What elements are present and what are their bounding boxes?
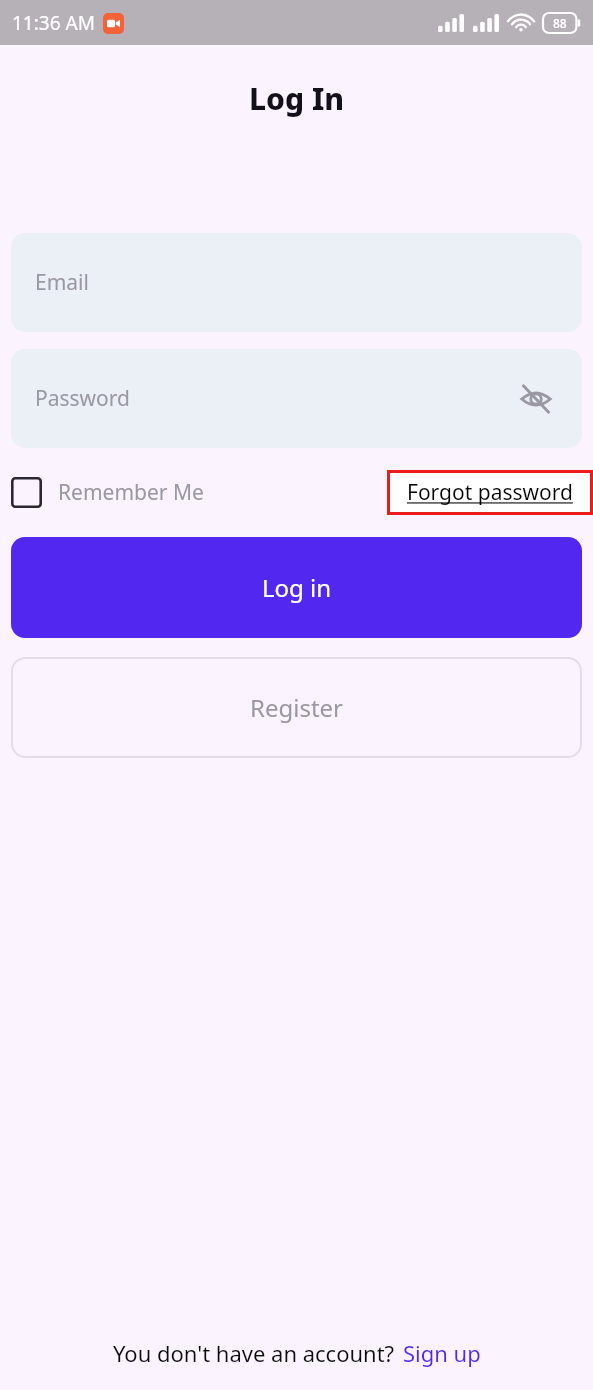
staticText: Log in (262, 571, 332, 604)
button[interactable]: Email (11, 233, 582, 332)
staticText: 88 (553, 15, 567, 31)
staticText: Forgot password (407, 478, 573, 507)
staticText: Remember Me (58, 478, 204, 507)
button[interactable]: Log in (11, 537, 582, 638)
staticText: You don't have an account? (113, 1338, 395, 1368)
button[interactable]: Show password (514, 377, 558, 421)
staticText: 11:36 AM (12, 10, 95, 36)
staticText: Log In (249, 78, 345, 119)
staticText: Email (35, 268, 89, 297)
button[interactable]: Remember Me (11, 477, 212, 508)
staticText: Register (250, 691, 344, 724)
button[interactable]: Register (11, 657, 582, 758)
button[interactable]: Forgot password (387, 470, 593, 515)
button[interactable]: Password (11, 349, 582, 448)
staticText: Sign up (403, 1338, 481, 1368)
staticText: Password (35, 384, 130, 413)
button[interactable]: Sign up (403, 1338, 481, 1368)
